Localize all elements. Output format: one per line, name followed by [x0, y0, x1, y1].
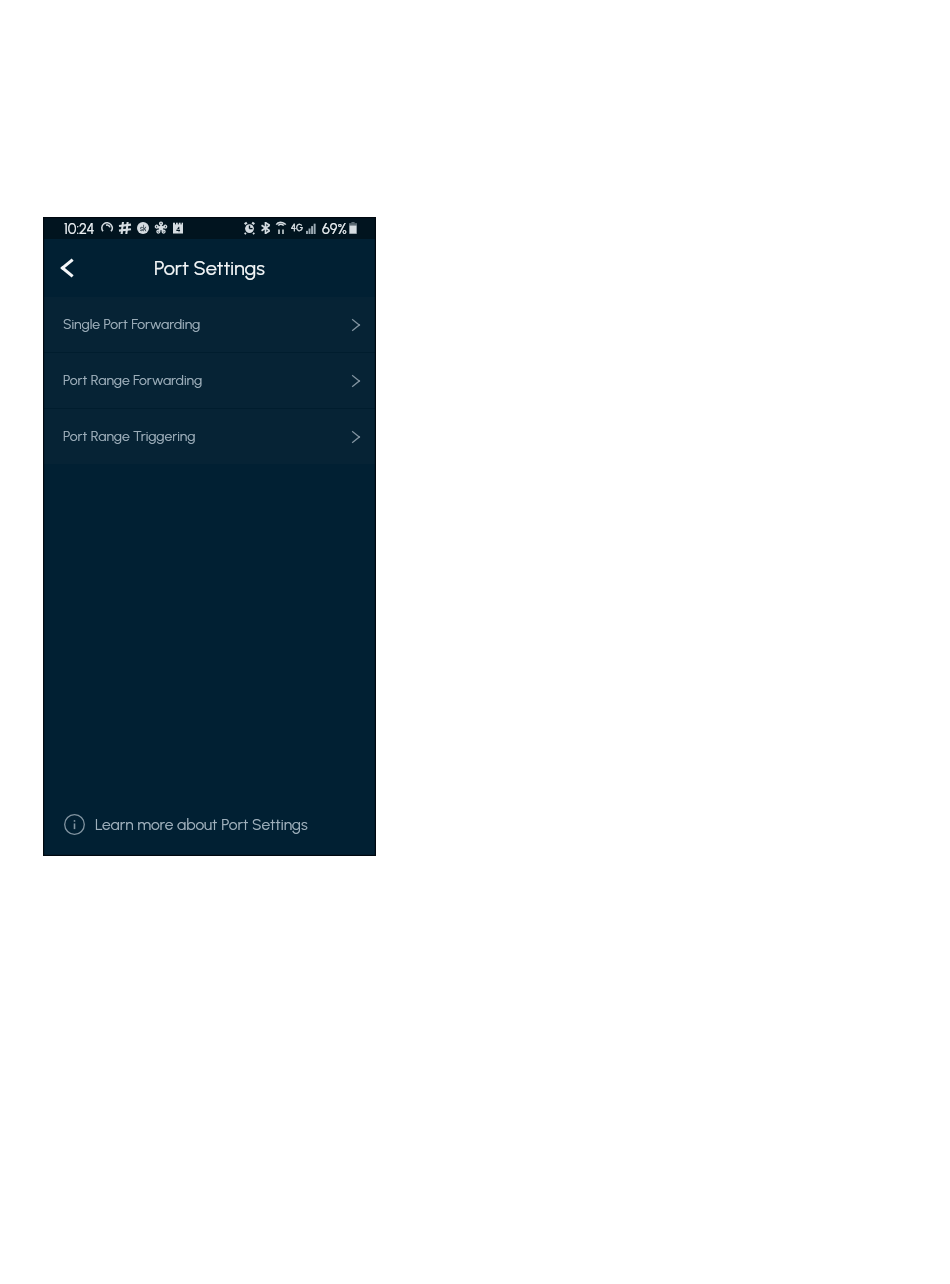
staticText: Single Port Forwarding: [63, 316, 201, 333]
staticText: 10:24: [64, 220, 95, 237]
staticText: Port Settings: [154, 256, 265, 280]
button[interactable]: Port Range Forwarding: [43, 353, 376, 408]
staticText: sk: [140, 224, 147, 232]
staticText: Learn more about Port Settings: [95, 815, 308, 834]
staticText: 4: [176, 224, 181, 234]
button[interactable]: Back: [43, 244, 91, 292]
staticText: Port Range Triggering: [63, 428, 196, 445]
button[interactable]: Learn more about Port Settings: [43, 802, 376, 846]
staticText: Port Range Forwarding: [63, 372, 203, 389]
button[interactable]: Port Range Triggering: [43, 409, 376, 464]
staticText: 4G: [291, 222, 303, 233]
staticText: 69%: [322, 220, 347, 237]
button[interactable]: Single Port Forwarding: [43, 297, 376, 352]
